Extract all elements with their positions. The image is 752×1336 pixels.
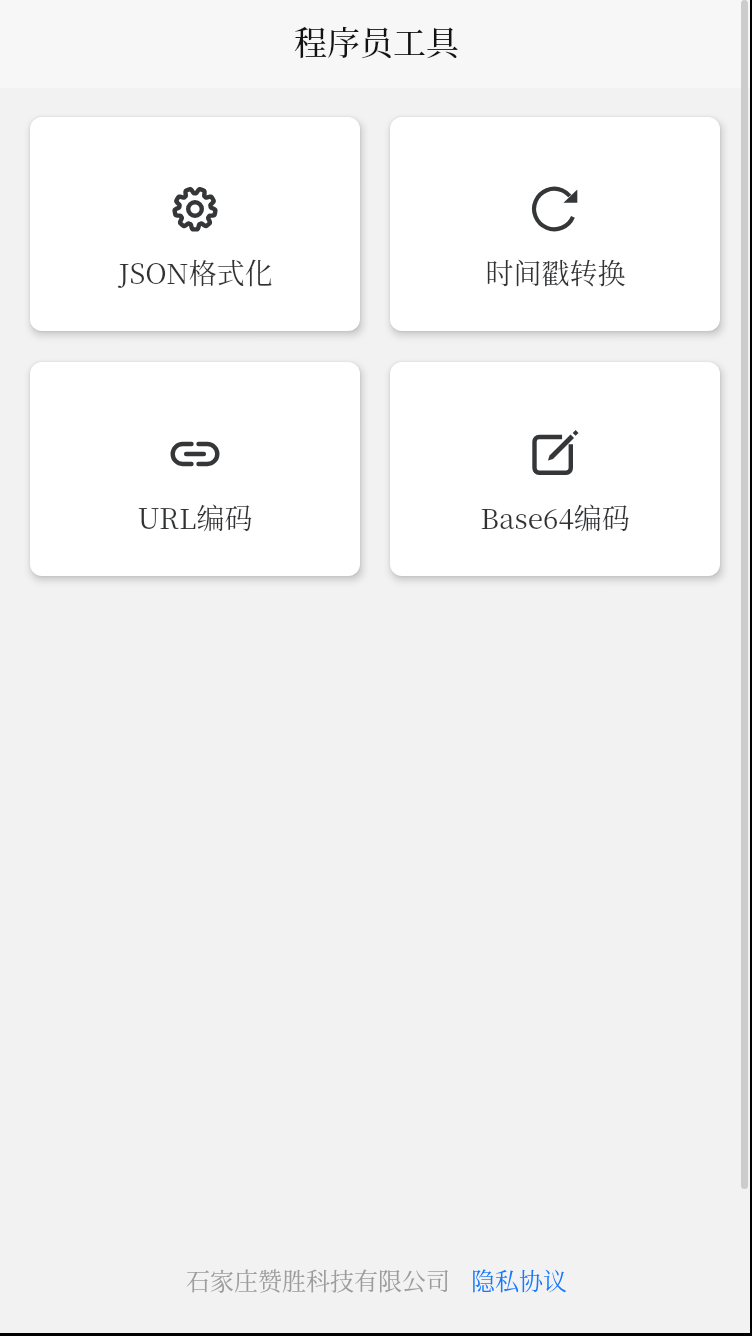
staticText: JSON格式化 [118, 252, 273, 292]
button[interactable]: 时间戳转换 [390, 117, 720, 331]
staticText: URL编码 [137, 497, 253, 537]
staticText: Base64编码 [480, 497, 630, 537]
button[interactable]: 隐私协议 [471, 1262, 567, 1296]
staticText: 隐私协议 [471, 1262, 567, 1296]
button[interactable]: Base64 编码 [390, 362, 720, 576]
button[interactable]: JSON 格式化 [30, 117, 360, 331]
staticText: 石家庄赞胜科技有限公司 [186, 1262, 450, 1296]
button[interactable]: URL 编码 [30, 362, 360, 576]
staticText: 程序员工具 [294, 17, 459, 64]
staticText: 时间戳转换 [485, 252, 626, 292]
